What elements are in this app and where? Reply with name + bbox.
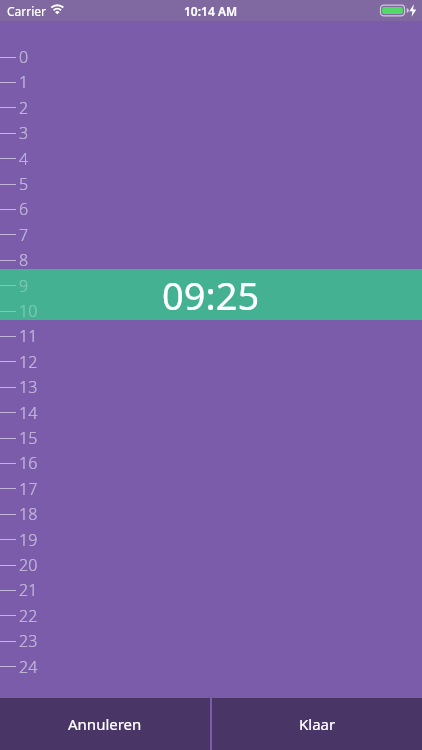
staticText: 8: [19, 249, 29, 271]
staticText: 16: [19, 452, 38, 474]
staticText: 6: [19, 198, 29, 220]
staticText: 12: [19, 351, 38, 373]
staticText: Annuleren: [68, 714, 142, 734]
staticText: 13: [19, 376, 38, 398]
staticText: 9: [19, 275, 29, 297]
staticText: 23: [19, 630, 38, 652]
staticText: 10:14 AM: [184, 3, 238, 19]
staticText: 7: [19, 224, 29, 246]
staticText: 09:25: [162, 269, 260, 320]
button[interactable]: Klaar: [212, 698, 422, 750]
staticText: 4: [19, 148, 29, 170]
staticText: 22: [19, 605, 38, 627]
staticText: 18: [19, 503, 38, 525]
staticText: 0: [19, 46, 29, 68]
button[interactable]: Annuleren: [0, 698, 210, 750]
staticText: 5: [19, 173, 29, 195]
staticText: 14: [19, 402, 38, 424]
staticText: 11: [19, 325, 38, 347]
staticText: 19: [19, 529, 38, 551]
staticText: 1: [19, 71, 29, 93]
staticText: 24: [19, 656, 38, 678]
staticText: Klaar: [299, 714, 336, 734]
staticText: 21: [19, 579, 38, 601]
staticText: Carrier: [7, 3, 47, 19]
staticText: 20: [19, 554, 38, 576]
staticText: 15: [19, 427, 38, 449]
staticText: 17: [19, 478, 38, 500]
staticText: 2: [19, 97, 29, 119]
staticText: 10: [19, 300, 38, 322]
button[interactable]: 09:25: [0, 269, 422, 320]
staticText: 3: [19, 122, 29, 144]
